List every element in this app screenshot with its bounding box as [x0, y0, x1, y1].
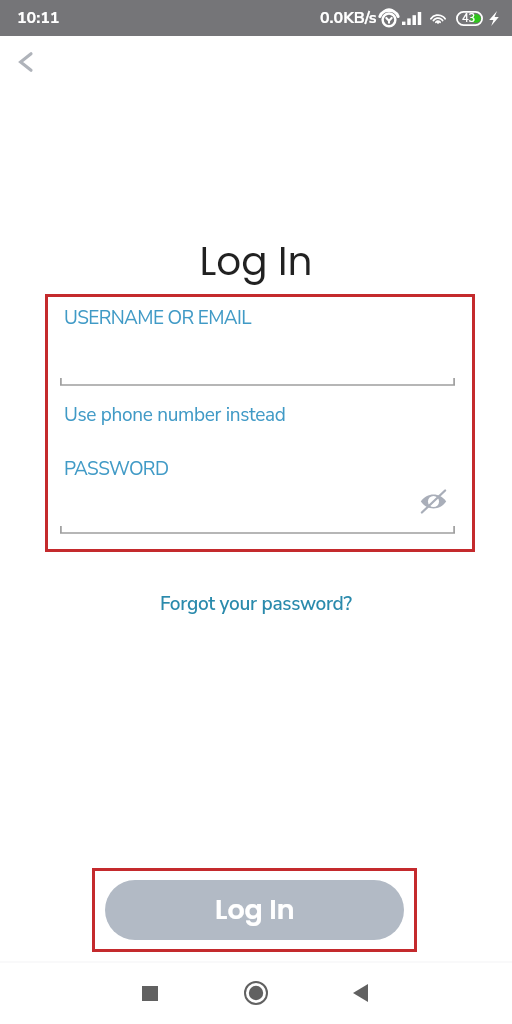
staticText: 10:11 [17, 7, 60, 29]
button[interactable]: Home [232, 969, 280, 1017]
button[interactable]: Use phone number instead [64, 400, 286, 430]
staticText: Log In [215, 891, 295, 929]
button[interactable]: Back [336, 969, 384, 1017]
button[interactable]: Back [2, 38, 50, 86]
staticText: Use phone number instead [64, 402, 286, 428]
button[interactable]: USERNAME OR EMAIL [48, 297, 472, 386]
staticText: 0.0KB/s [320, 7, 377, 29]
staticText: PASSWORD [64, 456, 169, 482]
staticText: 43 [462, 11, 476, 26]
staticText: USERNAME OR EMAIL [64, 305, 251, 331]
staticText: Forgot your password? [160, 591, 352, 617]
staticText: Log In [0, 234, 512, 289]
button[interactable]: Toggle password visibility [416, 484, 450, 518]
button[interactable]: Recent apps [126, 969, 174, 1017]
button[interactable]: Forgot your password? [150, 586, 362, 622]
button[interactable]: Log In [105, 880, 404, 940]
button[interactable]: PASSWORD [48, 448, 472, 534]
